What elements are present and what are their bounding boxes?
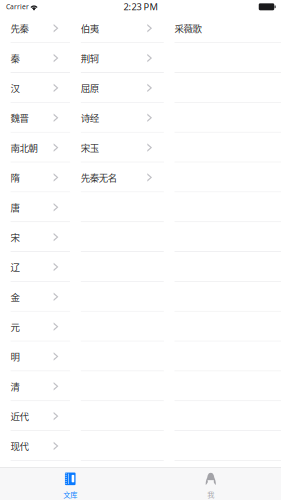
staticText: 我 [207,489,214,500]
staticText: 明 [11,350,20,363]
staticText: 荆轲 [81,51,99,65]
staticText: 屈原 [81,81,99,95]
button[interactable]: 近代 [0,401,70,431]
button[interactable]: 魏晋 [0,103,70,133]
button[interactable]: 元 [0,312,70,341]
button[interactable]: 明 [0,341,70,371]
button[interactable]: 荆轲 [70,43,164,73]
button[interactable]: 先秦 [0,13,70,43]
button[interactable]: 秦 [0,43,70,73]
button[interactable]: 南北朝 [0,133,70,162]
staticText: 金 [11,290,20,304]
staticText: 汉 [11,81,20,95]
button[interactable]: 屈原 [70,73,164,103]
button[interactable]: 隋 [0,162,70,192]
button[interactable]: 唐 [0,192,70,222]
button[interactable]: 采薇歌 [164,13,281,43]
button[interactable]: 文库 [0,467,140,500]
button[interactable]: 宋玉 [70,133,164,162]
button[interactable]: 清 [0,371,70,401]
staticText: 现代 [11,439,29,453]
staticText: 诗经 [81,111,99,125]
button[interactable]: 诗经 [70,103,164,133]
staticText: 辽 [11,260,20,274]
button[interactable]: 我 [140,467,281,500]
button[interactable]: 辽 [0,252,70,282]
staticText: 采薇歌 [174,21,201,35]
staticText: 元 [11,320,20,333]
staticText: 先秦 [11,21,29,35]
staticText: Carrier [6,2,29,11]
staticText: 魏晋 [11,111,29,125]
staticText: 宋玉 [81,141,99,154]
staticText: 近代 [11,409,29,423]
staticText: 清 [11,379,20,393]
button[interactable]: 汉 [0,73,70,103]
staticText: 伯夷 [81,21,99,35]
staticText: 先秦无名 [81,171,117,184]
button[interactable]: 宋 [0,222,70,252]
button[interactable]: 金 [0,282,70,312]
button[interactable]: 先秦无名 [70,162,164,192]
staticText: 宋 [11,230,20,244]
staticText: 2:23 PM [123,0,157,13]
button[interactable]: 现代 [0,431,70,461]
staticText: 南北朝 [11,141,38,154]
button[interactable]: 伯夷 [70,13,164,43]
staticText: 秦 [11,51,20,65]
staticText: 隋 [11,171,20,184]
staticText: 唐 [11,200,20,214]
staticText: 文库 [63,489,77,500]
